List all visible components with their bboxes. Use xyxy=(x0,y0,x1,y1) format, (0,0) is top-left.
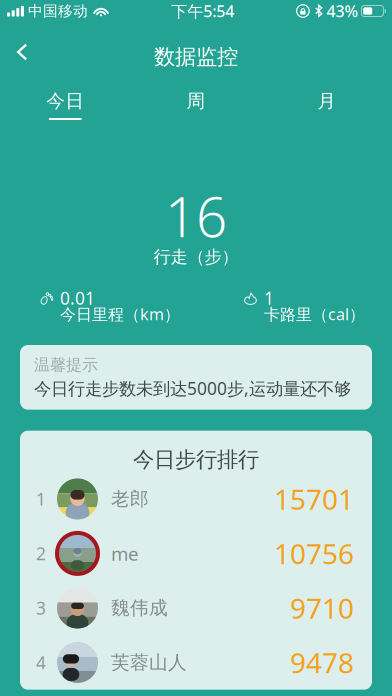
staticText: 温馨提示 xyxy=(34,355,98,375)
staticText: 0.01 xyxy=(60,286,95,309)
staticText: 中国移动 xyxy=(28,2,88,20)
staticText: 芙蓉山人 xyxy=(111,651,187,674)
staticText: 周 xyxy=(186,89,205,112)
staticText: 9710 xyxy=(290,589,354,626)
staticText: 9478 xyxy=(290,644,354,681)
button[interactable]: 3 xyxy=(20,581,372,635)
staticText: 今日 xyxy=(46,89,84,112)
staticText: 1 xyxy=(36,487,46,510)
staticText: 4 xyxy=(36,651,46,674)
staticText: 老郎 xyxy=(111,487,149,510)
staticText: 月 xyxy=(317,89,336,112)
staticText: 3 xyxy=(36,596,46,619)
staticText: 10756 xyxy=(274,535,354,572)
staticText: 今日步行排行 xyxy=(133,447,259,473)
staticText: 今日行走步数未到达5000步,运动量还不够 xyxy=(34,377,351,400)
button[interactable]: 4 xyxy=(20,635,372,690)
staticText: 数据监控 xyxy=(154,44,238,70)
staticText: 16 xyxy=(165,180,227,252)
staticText: me xyxy=(111,541,139,566)
staticText: 43% xyxy=(326,0,358,22)
staticText: 今日里程（km） xyxy=(60,303,180,325)
staticText: 2 xyxy=(36,542,46,565)
staticText: 1 xyxy=(264,286,274,309)
button[interactable]: Back xyxy=(0,30,44,74)
button[interactable]: 今日 xyxy=(0,74,131,126)
staticText: 卡路里（cal） xyxy=(264,303,365,325)
staticText: 行走（步） xyxy=(153,246,238,268)
staticText: 15701 xyxy=(274,480,354,517)
button[interactable]: 月 xyxy=(261,74,392,126)
button[interactable]: 2 xyxy=(20,526,372,581)
staticText: 魏伟成 xyxy=(111,596,168,619)
staticText: 下午5:54 xyxy=(171,0,234,22)
button[interactable]: 1 xyxy=(20,472,372,526)
button[interactable]: 周 xyxy=(131,74,261,126)
